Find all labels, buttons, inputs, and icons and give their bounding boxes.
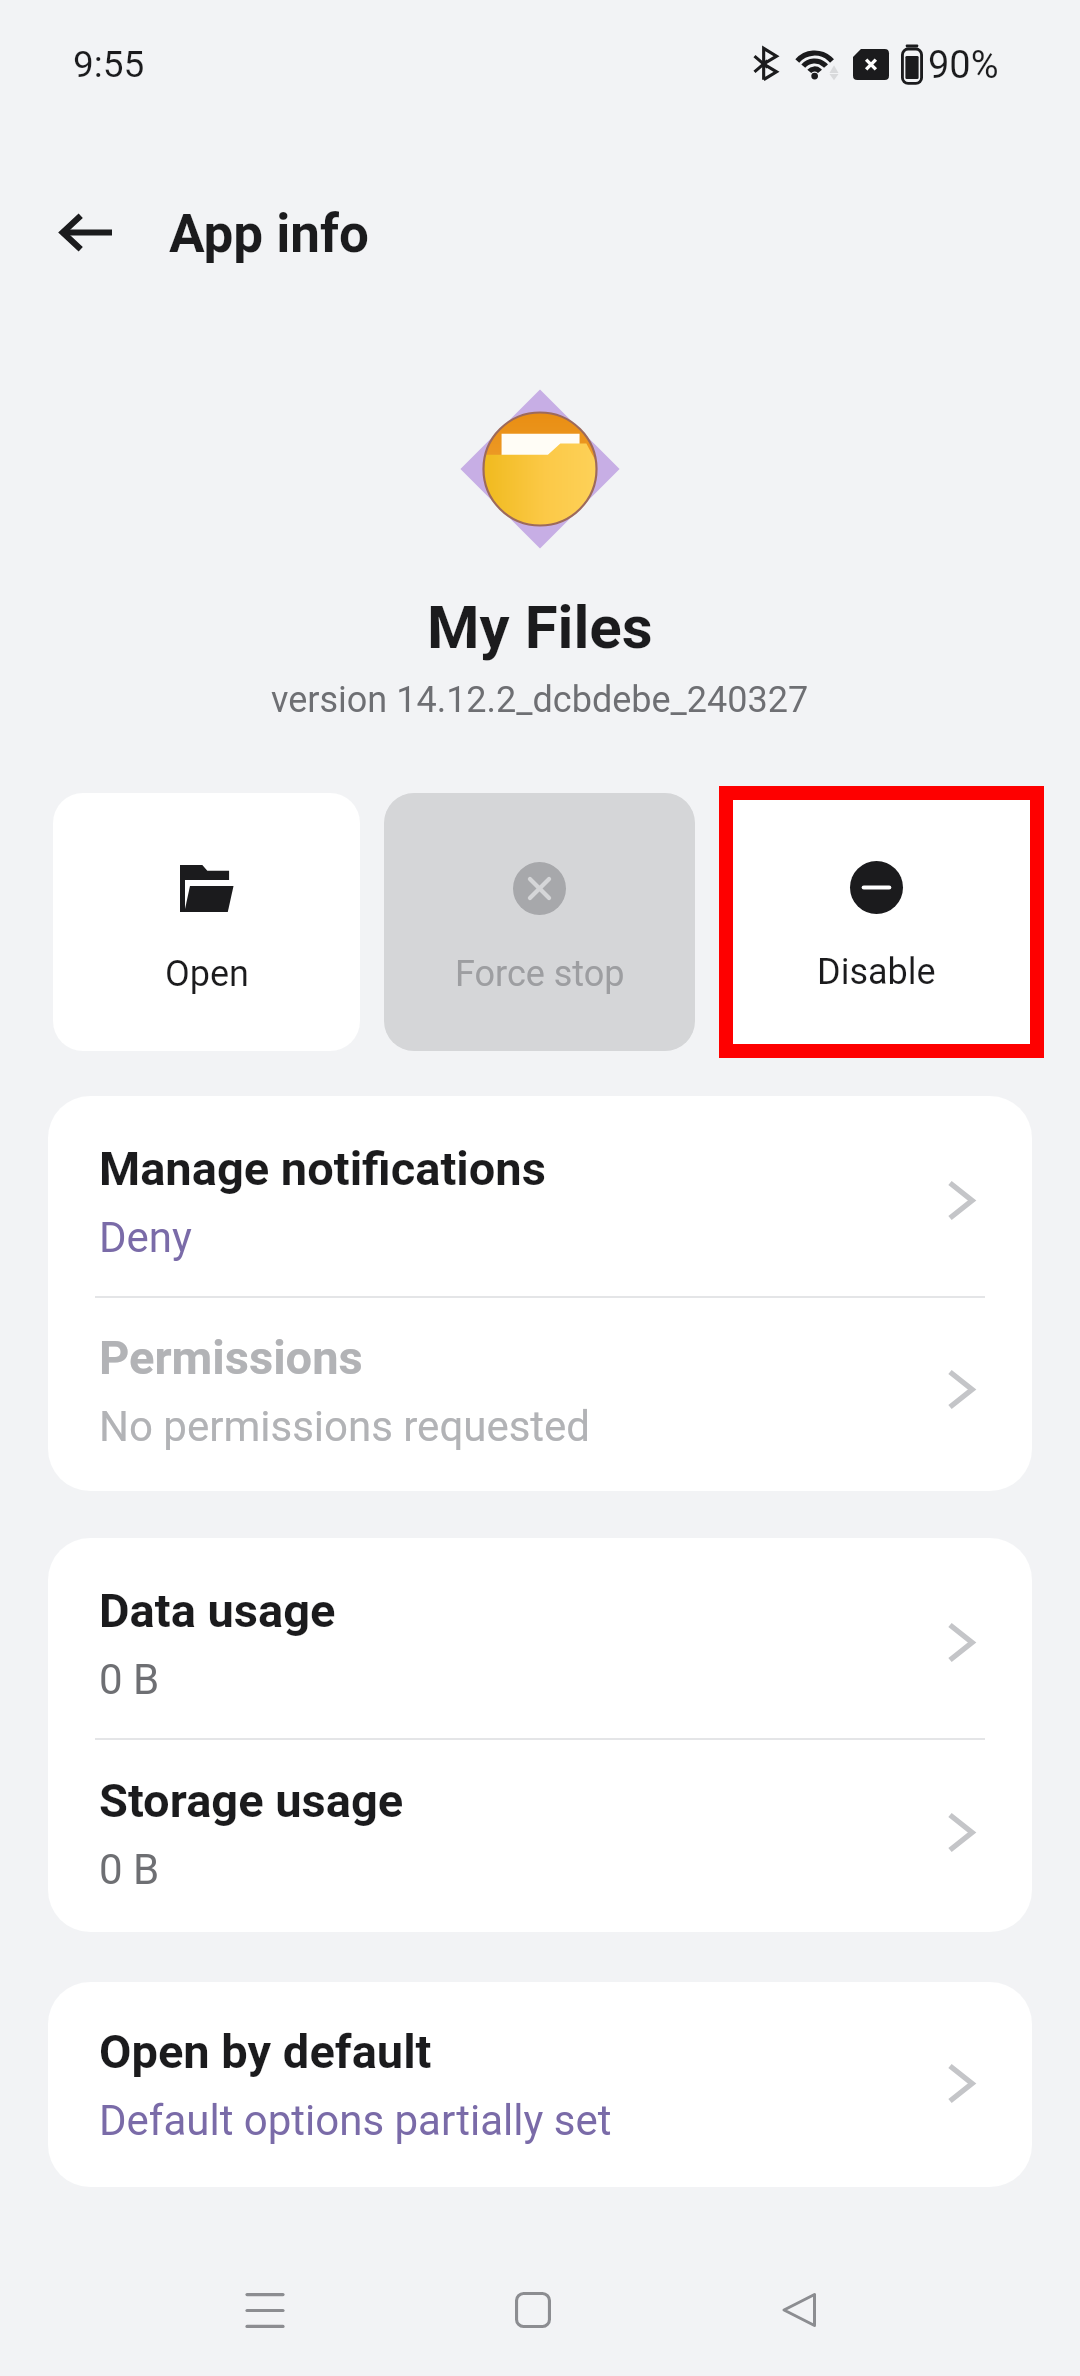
button[interactable]: Disable xyxy=(733,800,1030,1044)
button[interactable]: Manage notifications xyxy=(48,1096,1032,1296)
staticText: App info xyxy=(169,203,370,265)
staticText: My Files xyxy=(427,592,653,662)
staticText: Disable xyxy=(817,951,936,993)
staticText: Manage notifications xyxy=(99,1141,546,1196)
button[interactable]: Data usage xyxy=(48,1538,1032,1738)
button[interactable]: Open by default xyxy=(48,1982,1032,2187)
staticText: Default options partially set xyxy=(99,2096,612,2145)
button[interactable]: Open xyxy=(53,793,360,1051)
staticText: Permissions xyxy=(99,1330,363,1385)
staticText: Storage usage xyxy=(99,1773,404,1828)
button[interactable]: Back xyxy=(743,2255,853,2365)
button[interactable]: Permissions xyxy=(48,1298,1032,1491)
staticText: 90% xyxy=(928,43,999,88)
button[interactable]: Recent apps xyxy=(210,2255,320,2365)
staticText: Data usage xyxy=(99,1583,336,1638)
staticText: Open by default xyxy=(99,2024,432,2079)
button[interactable]: Home xyxy=(478,2255,588,2365)
staticText: No permissions requested xyxy=(99,1402,591,1451)
staticText: Open xyxy=(165,953,249,995)
staticText: 9:55 xyxy=(73,43,145,86)
staticText: Force stop xyxy=(455,953,625,995)
staticText: version 14.12.2_dcbdebe_240327 xyxy=(271,679,809,721)
button[interactable]: Storage usage xyxy=(48,1740,1032,1932)
button[interactable]: Force stop xyxy=(384,793,695,1051)
staticText: Deny xyxy=(99,1213,192,1262)
staticText: 0 B xyxy=(99,1655,160,1704)
staticText: 0 B xyxy=(99,1845,160,1894)
button[interactable]: Back xyxy=(31,178,139,286)
